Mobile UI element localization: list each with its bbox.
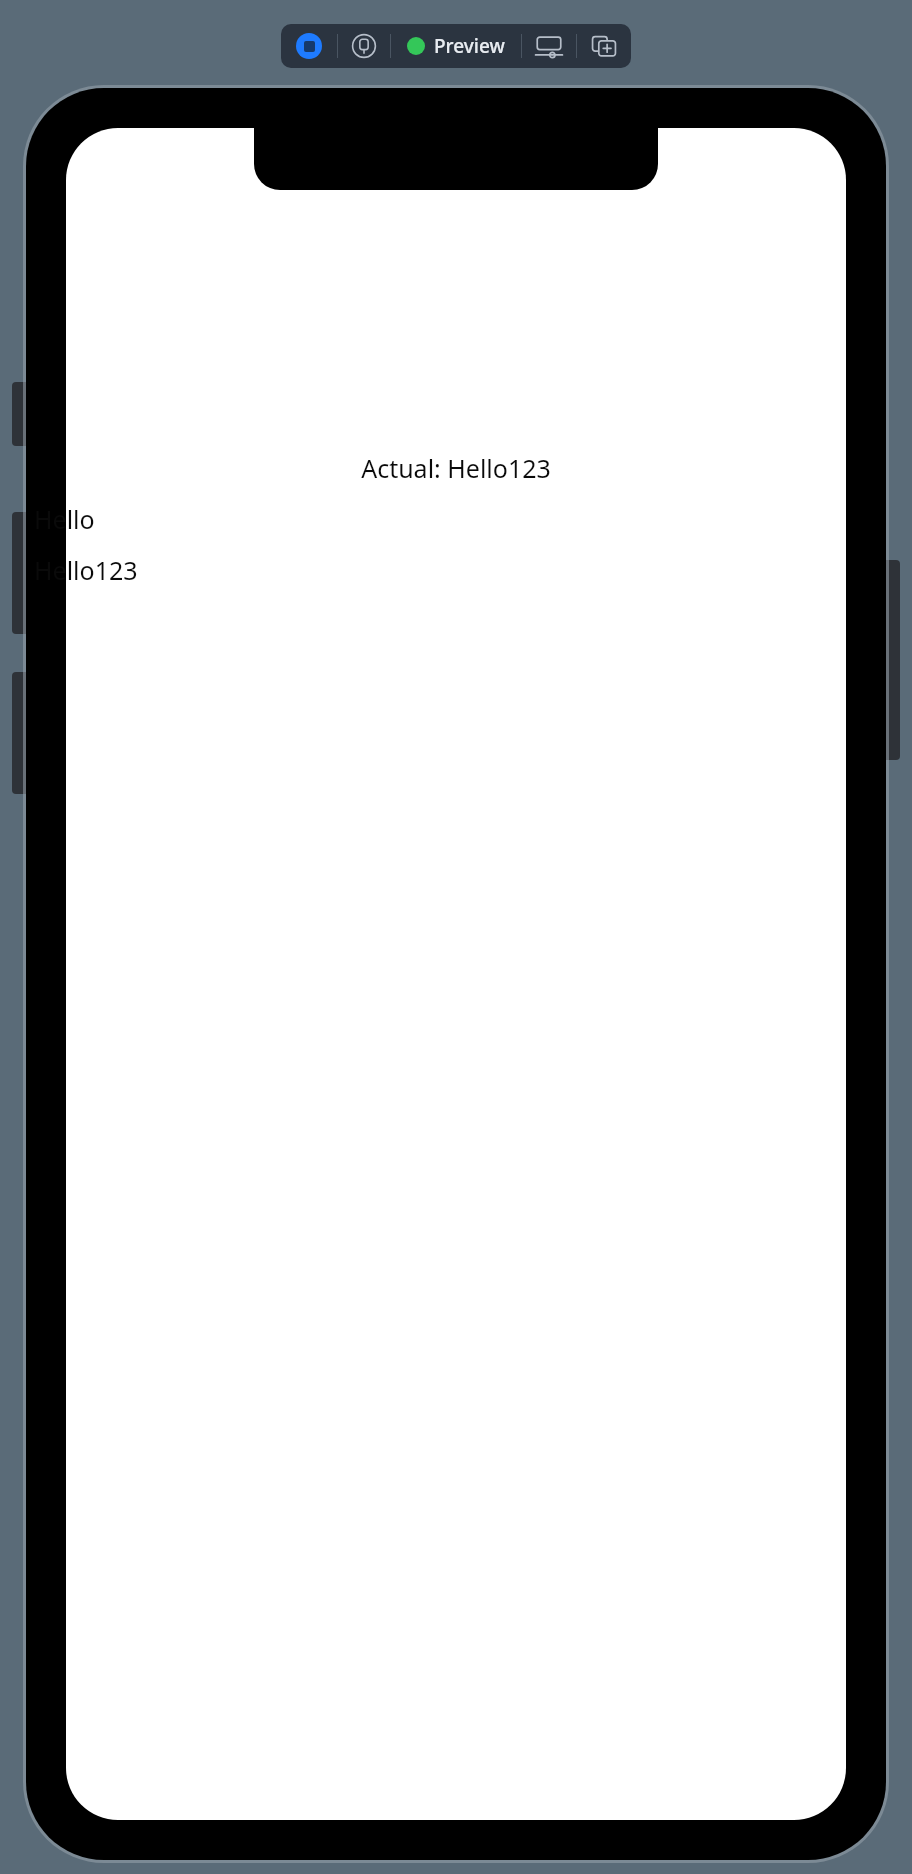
button[interactable]: Display settings — [522, 24, 576, 68]
button[interactable]: Preview — [391, 24, 521, 68]
staticText: Hello123 — [34, 553, 138, 587]
staticText: Preview — [434, 33, 505, 59]
staticText: Hello — [34, 502, 95, 536]
button[interactable]: Add preview — [577, 24, 631, 68]
staticText: Actual: Hello123 — [361, 451, 551, 485]
button[interactable]: Stop preview — [281, 24, 337, 68]
button[interactable]: Select device — [338, 24, 390, 68]
